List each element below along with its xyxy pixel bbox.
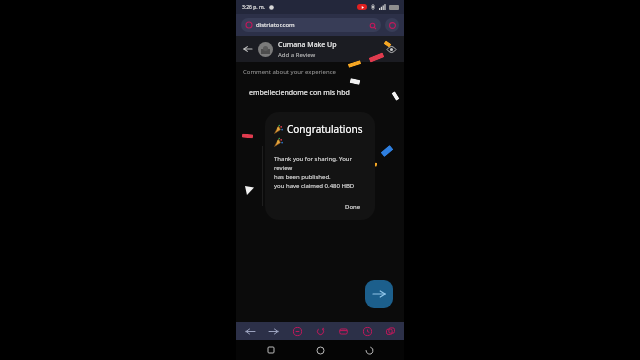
button[interactable]: distriator.com (241, 18, 381, 32)
button[interactable]: Search (369, 22, 376, 29)
button[interactable]: Reload (310, 322, 330, 340)
button[interactable]: Submit review (365, 280, 393, 308)
staticText: Cumana Make Up (278, 40, 337, 50)
staticText: Thank you for sharing. Your review has b… (274, 155, 366, 190)
staticText: Add a Review (278, 51, 316, 59)
staticText: Done (345, 203, 361, 211)
button[interactable]: Back (242, 43, 254, 55)
staticText: embelleciendome con mis hbd (249, 88, 350, 98)
button[interactable]: Home (306, 340, 334, 360)
button[interactable]: Back (240, 322, 260, 340)
button[interactable]: Home (287, 322, 307, 340)
button[interactable]: Done (340, 200, 366, 214)
button[interactable]: Profile (385, 18, 399, 32)
button[interactable]: Preview (385, 43, 398, 56)
button[interactable]: embelleciendome con mis hbd (243, 85, 397, 101)
button[interactable]: Recents (257, 340, 285, 360)
staticText: distriator.com (256, 21, 369, 29)
staticText: Comment about your experience (243, 68, 336, 76)
button[interactable]: Bookmarks (333, 322, 353, 340)
button[interactable]: Back (355, 340, 383, 360)
button[interactable]: History (357, 322, 377, 340)
button[interactable]: Tabs (380, 322, 400, 340)
staticText: Congratulations (287, 122, 363, 136)
staticText: 3:26 p. m. (242, 4, 265, 11)
button[interactable]: Forward (263, 322, 283, 340)
